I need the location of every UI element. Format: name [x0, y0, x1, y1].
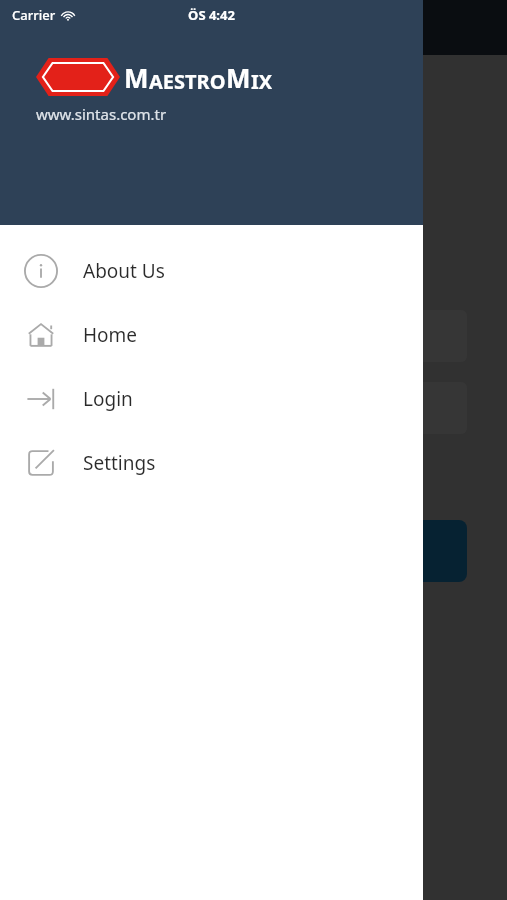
staticText: www.sintas.com.tr: [36, 104, 167, 124]
staticText: AESTRO: [149, 68, 226, 95]
button[interactable]: Settings: [0, 431, 423, 495]
button[interactable]: [0, 0, 507, 900]
staticText: Home: [83, 322, 138, 348]
staticText: M: [124, 60, 149, 95]
button[interactable]: About Us: [0, 239, 423, 303]
staticText: Settings: [83, 450, 156, 476]
staticText: About Us: [83, 258, 165, 284]
staticText: IX: [251, 68, 273, 95]
staticText: ÖS 4:42: [188, 6, 235, 24]
button[interactable]: [40, 520, 467, 582]
button[interactable]: Login: [0, 367, 423, 431]
button[interactable]: Home: [0, 303, 423, 367]
staticText: Carrier: [12, 6, 56, 24]
button[interactable]: Remember me toggle: [40, 454, 116, 498]
staticText: M: [226, 60, 251, 95]
staticText: Login: [83, 386, 133, 412]
